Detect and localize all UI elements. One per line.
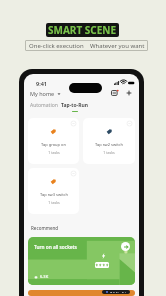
button[interactable]: Turn on all sockets	[28, 237, 135, 285]
button[interactable]: My home	[30, 90, 61, 97]
button[interactable]: Messages	[111, 89, 119, 97]
staticText: My home	[30, 90, 55, 97]
staticText: SMART SCENE	[48, 23, 117, 37]
staticText: 1 tasks	[48, 200, 60, 205]
staticText: 1 tasks	[103, 150, 115, 155]
button[interactable]: Tap sw2 switch	[83, 118, 135, 164]
staticText: Tap sw2 switch	[95, 142, 123, 147]
staticText: Tap-to-Run	[61, 102, 88, 109]
staticText: 1 tasks	[48, 150, 60, 155]
button[interactable]: Add to list	[28, 290, 135, 296]
button[interactable]: Add	[125, 89, 133, 97]
button[interactable]: Add to list	[105, 291, 127, 293]
button[interactable]: Open scene	[121, 242, 130, 251]
button[interactable]: Tap group on	[28, 118, 79, 164]
staticText: Recommend	[31, 225, 59, 231]
staticText: Turn on all sockets	[34, 244, 77, 251]
button[interactable]: Automation	[30, 102, 58, 109]
button[interactable]: Tap-to-Run	[61, 102, 88, 112]
staticText: One-click execution	[29, 42, 84, 50]
button[interactable]: Tap sw3 switch	[28, 168, 79, 214]
staticText: Tap sw3 switch	[40, 192, 68, 197]
staticText: Tap group on	[41, 142, 66, 147]
staticText: Add to list	[110, 291, 127, 293]
staticText: Whatever you want	[90, 42, 145, 50]
staticText: 9:41	[36, 80, 47, 87]
staticText: 6.3K	[40, 274, 49, 279]
staticText: Automation	[30, 102, 58, 109]
